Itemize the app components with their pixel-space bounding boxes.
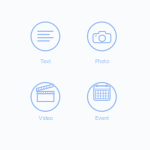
staticText: Video bbox=[38, 115, 52, 121]
button[interactable]: Photo bbox=[0, 0, 150, 150]
button[interactable]: Text bbox=[0, 0, 150, 150]
button[interactable]: Video bbox=[0, 0, 150, 150]
staticText: Text bbox=[40, 58, 51, 65]
button[interactable]: Event bbox=[0, 0, 150, 150]
staticText: Event bbox=[95, 115, 109, 121]
staticText: Photo bbox=[95, 58, 109, 65]
